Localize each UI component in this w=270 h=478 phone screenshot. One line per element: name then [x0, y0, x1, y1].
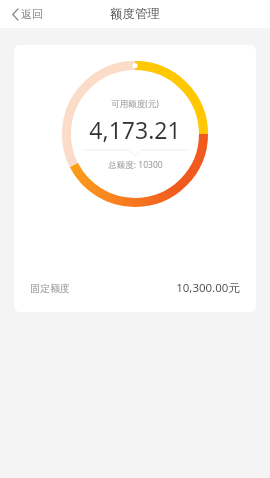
staticText: 4,173.21	[89, 114, 181, 145]
staticText: 固定额度	[30, 282, 70, 295]
button[interactable]: 返回	[8, 4, 47, 24]
staticText: 可用额度(元)	[111, 98, 159, 110]
staticText: 额度管理	[110, 6, 160, 22]
staticText: 10,300.00元	[176, 280, 240, 296]
staticText: 总额度: 10300	[108, 159, 163, 171]
staticText: 返回	[21, 7, 43, 21]
button[interactable]: 固定额度	[14, 264, 256, 312]
other: Available credit gauge	[62, 61, 208, 207]
